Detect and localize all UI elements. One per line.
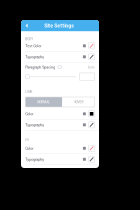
staticText: Auto: [88, 65, 95, 69]
staticText: Typography: [25, 157, 44, 162]
staticText: Color: [25, 111, 33, 116]
staticText: H1: [25, 138, 29, 142]
button[interactable]: Back: [22, 20, 31, 31]
staticText: Typography: [25, 122, 44, 127]
button[interactable]: Text Color: [21, 40, 99, 51]
button[interactable]: Color: [21, 143, 99, 154]
staticText: Text Color: [25, 43, 41, 48]
button[interactable]: NORMAL: [25, 97, 62, 107]
staticText: NORMAL: [37, 100, 50, 104]
staticText: Paragraph Spacing: [25, 65, 55, 70]
staticText: HOVER: [73, 100, 83, 104]
button[interactable]: Typography: [21, 154, 99, 165]
staticText: BODY: [25, 37, 33, 41]
staticText: Site Settings: [44, 22, 74, 29]
button[interactable]: HOVER: [62, 97, 95, 107]
button[interactable]: Color: [21, 108, 99, 119]
button[interactable]: Typography: [21, 51, 99, 62]
staticText: LINK: [25, 89, 32, 94]
button[interactable]: Typography: [21, 119, 99, 130]
staticText: Color: [25, 146, 33, 151]
staticText: Typography: [25, 54, 44, 59]
